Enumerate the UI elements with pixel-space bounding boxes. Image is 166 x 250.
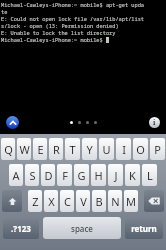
button[interactable]: W	[17, 138, 31, 160]
staticText: s/lock - open (13: Permission denied)	[1, 22, 119, 29]
button[interactable]: I	[116, 138, 131, 160]
staticText: O	[136, 142, 145, 157]
button[interactable]: space	[43, 217, 121, 239]
staticText: W	[19, 142, 30, 157]
button[interactable]: Info	[149, 117, 160, 128]
button[interactable]: U	[99, 138, 114, 160]
button[interactable]: K	[125, 164, 140, 186]
button[interactable]: R	[49, 138, 63, 160]
button[interactable]: G	[74, 164, 89, 186]
staticText: I	[122, 142, 126, 157]
staticText: M	[126, 194, 136, 209]
staticText: P	[154, 142, 161, 157]
button[interactable]: Show menu	[6, 116, 19, 129]
staticText: Michael-Cawleys-iPhone:~ mobile$	[1, 36, 103, 43]
button[interactable]: S	[25, 164, 39, 186]
button[interactable]: M	[124, 190, 138, 212]
staticText: F	[62, 168, 68, 183]
staticText: Q	[4, 142, 13, 157]
staticText: i	[153, 118, 156, 128]
staticText: Y	[86, 142, 93, 157]
staticText: N	[111, 194, 120, 209]
button[interactable]: T	[65, 138, 80, 160]
button[interactable]: Q	[1, 138, 15, 160]
button[interactable]: V	[76, 190, 90, 212]
staticText: Z	[32, 194, 39, 209]
button[interactable]: Z	[28, 190, 42, 212]
staticText: V	[80, 194, 87, 209]
staticText: C	[64, 194, 71, 209]
staticText: K	[129, 168, 136, 183]
button[interactable]: H	[91, 164, 106, 186]
staticText: H	[94, 168, 103, 183]
button[interactable]: O	[133, 138, 148, 160]
button[interactable]: J	[108, 164, 123, 186]
staticText: E	[37, 142, 44, 157]
staticText: U	[102, 142, 111, 157]
staticText: X	[48, 194, 55, 209]
staticText: A	[12, 168, 20, 183]
button[interactable]: C	[60, 190, 74, 212]
staticText: J	[114, 168, 118, 183]
button[interactable]: F	[57, 164, 72, 186]
staticText: return	[131, 223, 157, 234]
staticText: E: Unable to lock the list directory	[1, 29, 116, 36]
button[interactable]: A	[9, 164, 23, 186]
button[interactable]: N	[108, 190, 122, 212]
staticText: E: Could not open lock file /var/lib/apt…	[1, 15, 145, 22]
staticText: T	[69, 142, 76, 157]
button[interactable]: return	[125, 217, 163, 239]
button[interactable]: Backspace	[144, 190, 164, 212]
staticText: G	[77, 168, 86, 183]
button[interactable]: D	[41, 164, 55, 186]
button[interactable]: E	[33, 138, 47, 160]
button[interactable]: Michael-Cawleys-iPhone:~ mobile$ apt-get…	[0, 0, 166, 134]
staticText: .?123	[11, 223, 31, 234]
staticText: S	[29, 168, 36, 183]
button[interactable]: L	[142, 164, 157, 186]
button[interactable]: .?123	[3, 217, 39, 239]
staticText: B	[95, 194, 103, 209]
button[interactable]: B	[92, 190, 106, 212]
staticText: space	[71, 223, 93, 234]
staticText: D	[44, 168, 53, 183]
button[interactable]: P	[150, 138, 165, 160]
staticText: L	[147, 168, 153, 183]
button[interactable]: Y	[82, 138, 97, 160]
button[interactable]: Shift	[2, 190, 22, 212]
staticText: R	[53, 142, 60, 157]
staticText: te	[1, 8, 8, 15]
staticText: Michael-Cawleys-iPhone:~ mobile$ apt-get…	[1, 1, 145, 8]
button[interactable]: X	[44, 190, 58, 212]
